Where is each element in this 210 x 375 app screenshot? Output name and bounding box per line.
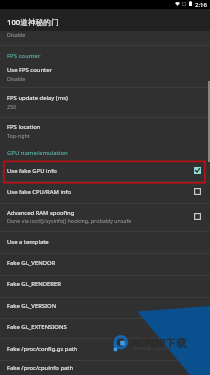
button[interactable] [0,360,210,375]
staticText: Done via ioctl()/sysinfo() hooking, prob… [7,217,132,224]
staticText: Advanced RAM spoofing [7,209,75,217]
staticText: Fake GL_EXTENSIONS [7,323,67,331]
button[interactable] [0,31,210,45]
staticText: Fake /proc/config.gz path [7,345,78,353]
staticText: Disable [7,31,26,38]
button[interactable] [0,254,210,275]
other: Checked [194,167,201,174]
button[interactable] [0,297,210,318]
other: Unchecked [194,188,201,195]
staticText: PCPOP.COM Download [133,347,168,351]
button[interactable] [0,339,210,360]
staticText: Top-right [7,132,30,139]
staticText: Disable [7,75,26,82]
button[interactable] [0,117,210,145]
staticText: Fake /proc/cpuinfo path [7,364,74,372]
button[interactable] [0,232,210,253]
staticText: Fake GL_RENDERER [7,280,61,288]
button[interactable] [0,276,210,296]
staticText: GPU name/emulation [7,149,68,157]
staticText: PCPOP下载 [131,336,187,350]
staticText: Use FPS counter [7,66,52,74]
button[interactable] [0,62,210,87]
button[interactable] [0,203,210,231]
staticText: FPS update delay (ms) [7,94,68,102]
staticText: Use fake CPU/RAM info [7,188,72,196]
staticText: Use a template [7,238,49,246]
staticText: 100道神秘的门 [7,17,59,28]
staticText: Fake GL_VERSION [7,302,57,310]
button[interactable] [0,318,210,338]
staticText: 2:16 [195,1,207,9]
staticText: 250 [7,103,17,110]
button[interactable] [0,181,210,202]
other: Battery [189,1,192,6]
staticText: FPS counter [7,52,41,60]
staticText: Use fake GPU info [7,167,57,175]
button[interactable] [0,161,210,180]
button[interactable] [0,88,210,116]
other: Unchecked [194,213,201,220]
staticText: Fake GL_VENDOR [7,259,56,267]
staticText: FPS location [7,123,41,131]
other: Wi-Fi [175,2,180,6]
